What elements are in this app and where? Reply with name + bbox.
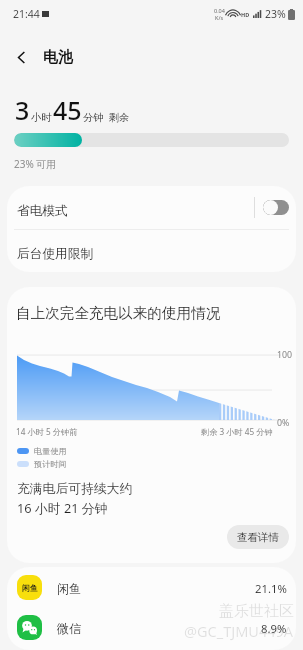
staticText: 闲鱼	[22, 583, 38, 593]
staticText: K/s	[215, 14, 224, 21]
staticText: 电池	[43, 48, 73, 67]
staticText: 分钟 剩余	[83, 110, 130, 124]
staticText: 剩余 3 小时 45 分钟	[201, 426, 273, 437]
staticText: 盖乐世社区	[219, 602, 294, 621]
staticText: 电量使用	[34, 446, 67, 456]
staticText: 16 小时 21 分钟	[17, 499, 108, 516]
staticText: HD	[241, 11, 250, 18]
button[interactable]: 查看详情	[227, 525, 289, 549]
staticText: 充满电后可持续大约	[17, 481, 133, 497]
staticText: 后台使用限制	[17, 246, 94, 262]
staticText: 23%	[265, 7, 286, 21]
staticText: 小时	[31, 111, 52, 124]
staticText: 0%	[277, 417, 290, 429]
staticText: 21:44	[13, 7, 40, 21]
button[interactable]: Back	[8, 44, 34, 70]
staticText: 省电模式	[17, 203, 68, 219]
staticText: @GC_TJMU449A	[184, 621, 294, 641]
staticText: 100	[277, 349, 293, 361]
button[interactable]: 闲鱼	[7, 575, 296, 600]
staticText: 闲鱼	[57, 581, 82, 596]
staticText: 查看详情	[237, 531, 279, 544]
staticText: 微信	[57, 621, 82, 636]
staticText: 21.1%	[255, 581, 287, 596]
staticText: 3	[15, 93, 30, 127]
staticText: 23% 可用	[14, 157, 57, 171]
staticText: 45	[53, 93, 82, 127]
staticText: 预计时间	[34, 459, 67, 469]
button[interactable]: 省电模式	[7, 186, 296, 229]
staticText: 8.9%	[261, 621, 287, 636]
staticText: 14 小时 5 分钟前	[16, 426, 78, 437]
button[interactable]: 后台使用限制	[7, 230, 296, 272]
staticText: 0.04	[214, 7, 225, 14]
staticText: 自上次完全充电以来的使用情况	[16, 304, 221, 322]
button[interactable]: 微信	[7, 615, 296, 640]
button[interactable]: Power saving mode toggle	[263, 200, 289, 215]
